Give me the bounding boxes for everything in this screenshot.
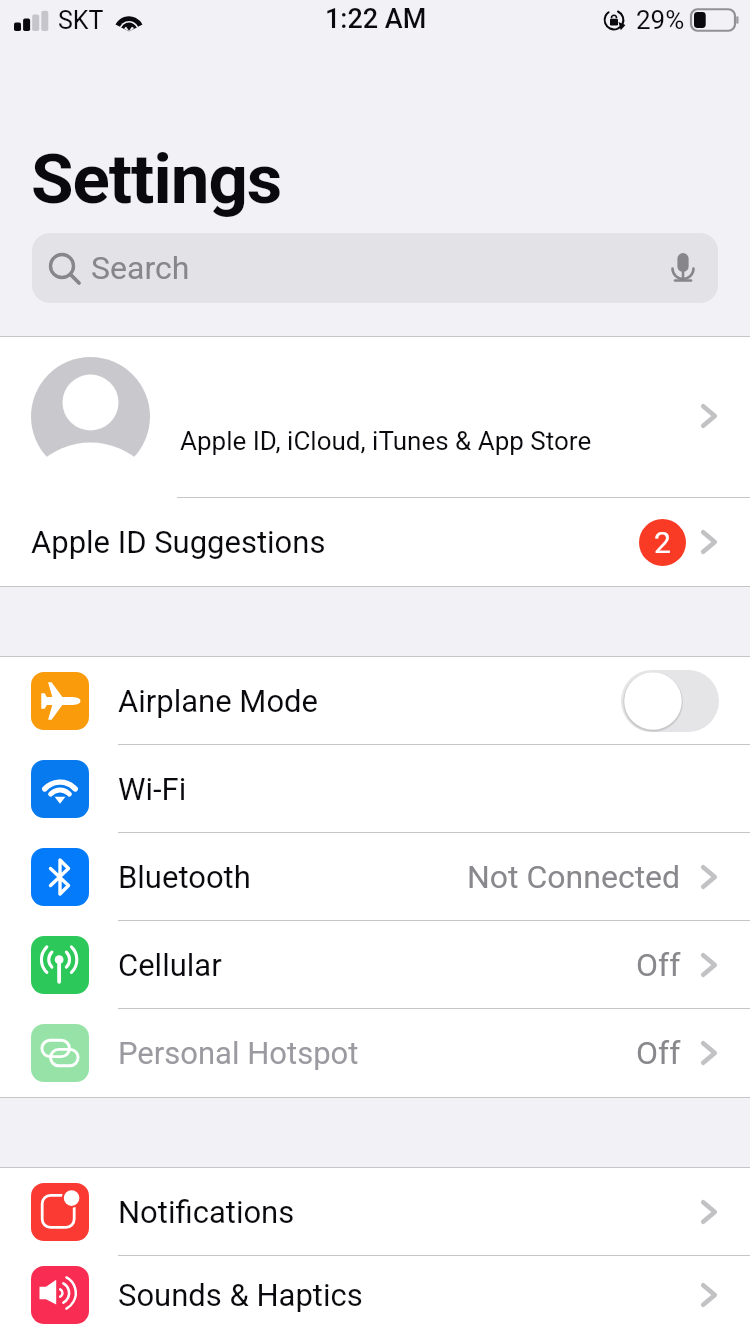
staticText: Bluetooth — [118, 859, 251, 895]
staticText: Airplane Mode — [118, 683, 318, 719]
button[interactable]: Airplane Mode toggle, off — [621, 670, 719, 732]
staticText: 1:22 AM — [325, 3, 427, 35]
staticText: Apple ID, iCloud, iTunes & App Store — [180, 426, 592, 456]
other: Voice search — [666, 251, 700, 285]
other: Cellular signal — [14, 10, 47, 31]
staticText: SKT — [58, 6, 104, 35]
staticText: 2 — [654, 525, 671, 560]
staticText: Wi-Fi — [118, 771, 187, 807]
staticText: Personal Hotspot — [118, 1035, 359, 1071]
button[interactable]: Airplane Mode — [0, 657, 750, 745]
other: Wi-Fi — [114, 10, 144, 32]
button[interactable]: Personal Hotspot — [0, 1009, 750, 1097]
other: Battery 29 percent — [691, 9, 739, 31]
staticText: 29% — [636, 5, 685, 35]
button[interactable]: Wi-Fi — [0, 745, 750, 833]
staticText: Off — [636, 1034, 681, 1072]
staticText: Notifications — [118, 1194, 295, 1230]
button[interactable]: Cellular — [0, 921, 750, 1009]
button[interactable]: Apple ID, iCloud, iTunes & App Store — [0, 337, 750, 497]
button[interactable]: Sounds & Haptics — [0, 1256, 750, 1334]
staticText: Settings — [31, 139, 282, 220]
staticText: Off — [636, 946, 681, 984]
staticText: Sounds & Haptics — [118, 1277, 363, 1313]
button[interactable]: Search — [32, 233, 718, 303]
staticText: Not Connected — [467, 858, 681, 896]
button[interactable]: Notifications — [0, 1168, 750, 1256]
other: Rotation lock — [603, 9, 625, 31]
button[interactable]: Apple ID Suggestions — [0, 498, 750, 586]
staticText: Search — [91, 249, 190, 287]
staticText: Apple ID Suggestions — [31, 524, 326, 560]
staticText: Cellular — [118, 947, 222, 983]
button[interactable]: Bluetooth — [0, 833, 750, 921]
